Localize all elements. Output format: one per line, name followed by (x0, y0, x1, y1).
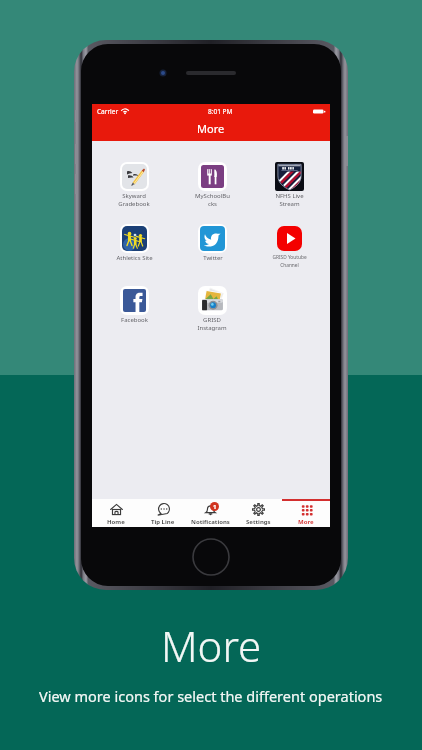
button[interactable]: GRISD Instagram (197, 286, 227, 332)
button[interactable]: Home (92, 499, 139, 527)
staticText: Notifications (191, 518, 230, 526)
staticText: Carrier (97, 107, 119, 116)
other: Notifications (204, 503, 217, 516)
staticText: View more icons for select the different… (39, 686, 383, 706)
staticText: Facebook (121, 316, 148, 324)
button[interactable]: NFHS Live Stream (275, 162, 304, 208)
other: Settings (252, 503, 265, 516)
staticText: NFHS Live Stream (275, 192, 304, 208)
staticText: More (161, 617, 262, 674)
staticText: MySchoolBu cks (195, 192, 230, 208)
other: Home (110, 503, 123, 516)
staticText: More (298, 518, 314, 526)
button[interactable]: Notifications (186, 499, 234, 527)
staticText: Twitter (203, 254, 223, 262)
other: Tip Line (157, 503, 170, 516)
staticText: 1 (213, 503, 217, 511)
staticText: GRISD Instagram (197, 316, 227, 332)
staticText: Tip Line (151, 518, 175, 526)
staticText: Athletics Site (116, 254, 153, 262)
staticText: Skyward Gradebook (118, 192, 150, 208)
button[interactable]: Twitter (198, 224, 227, 262)
button[interactable]: Skyward Gradebook (118, 162, 150, 208)
button[interactable]: Settings (234, 499, 282, 527)
button[interactable]: More (282, 499, 330, 527)
button[interactable]: Tip Line (139, 499, 186, 527)
button[interactable]: Athletics Site (116, 224, 153, 262)
staticText: More (197, 121, 225, 136)
button[interactable]: MySchoolBu cks (195, 162, 230, 208)
other: More (300, 503, 313, 516)
staticText: Settings (246, 518, 271, 526)
button[interactable]: Facebook (120, 286, 149, 324)
staticText: GRISD Youtube Channel (272, 254, 307, 269)
staticText: Home (107, 518, 125, 526)
staticText: 8:01 PM (208, 107, 233, 116)
button[interactable]: GRISD Youtube Channel (272, 224, 307, 269)
